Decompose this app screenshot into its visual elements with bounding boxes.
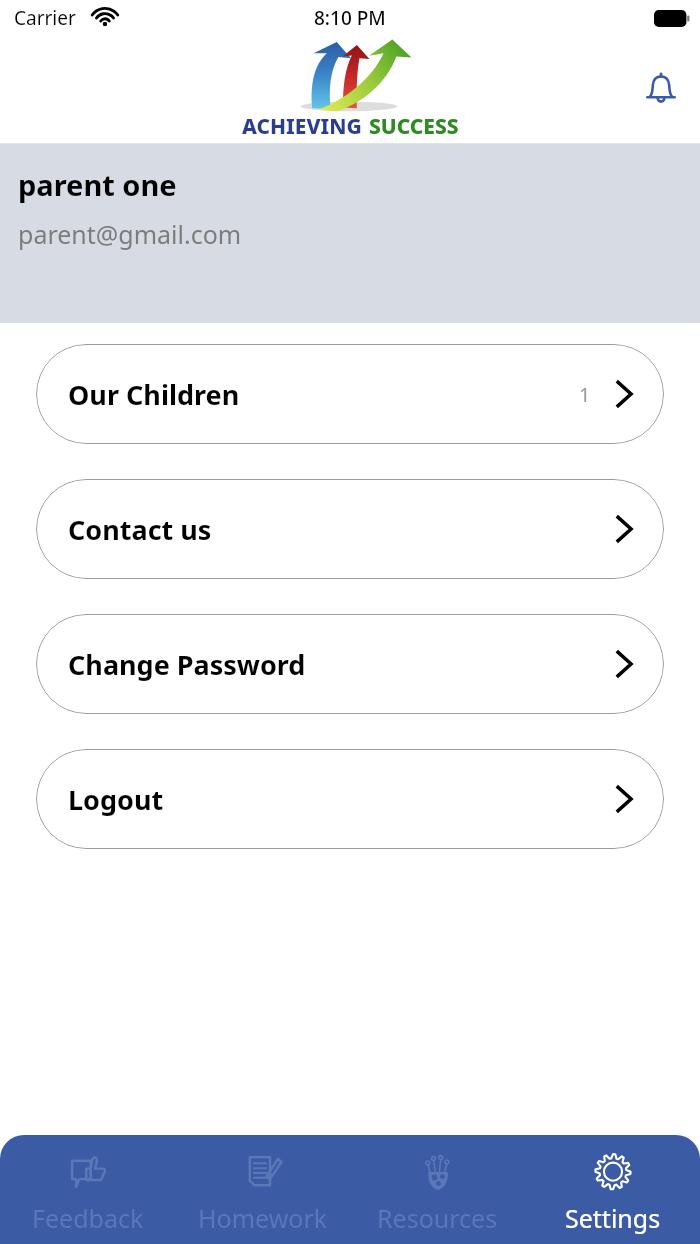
- staticText: 8:10 PM: [314, 5, 386, 31]
- button[interactable]: Settings: [525, 1135, 700, 1244]
- staticText: Resources: [377, 1201, 498, 1235]
- staticText: Our Children: [68, 376, 240, 413]
- staticText: parent@gmail.com: [18, 217, 242, 251]
- button[interactable]: Resources: [350, 1135, 525, 1244]
- button[interactable]: Homework: [175, 1135, 350, 1244]
- staticText: ACHIEVING: [242, 112, 362, 141]
- button[interactable]: Feedback: [0, 1135, 175, 1244]
- staticText: Logout: [68, 781, 164, 818]
- staticText: Carrier: [14, 5, 76, 31]
- button[interactable]: Change Password: [36, 614, 664, 714]
- staticText: Change Password: [68, 646, 306, 683]
- button[interactable]: Our Children: [36, 344, 664, 444]
- button[interactable]: Contact us: [36, 479, 664, 579]
- staticText: Contact us: [68, 511, 212, 548]
- button[interactable]: Notifications: [632, 61, 690, 119]
- staticText: Settings: [565, 1201, 661, 1235]
- staticText: parent one: [18, 165, 177, 204]
- button[interactable]: Logout: [36, 749, 664, 849]
- staticText: Feedback: [32, 1201, 144, 1235]
- staticText: SUCCESS: [369, 112, 459, 141]
- staticText: 1: [579, 381, 591, 408]
- staticText: Homework: [198, 1201, 328, 1235]
